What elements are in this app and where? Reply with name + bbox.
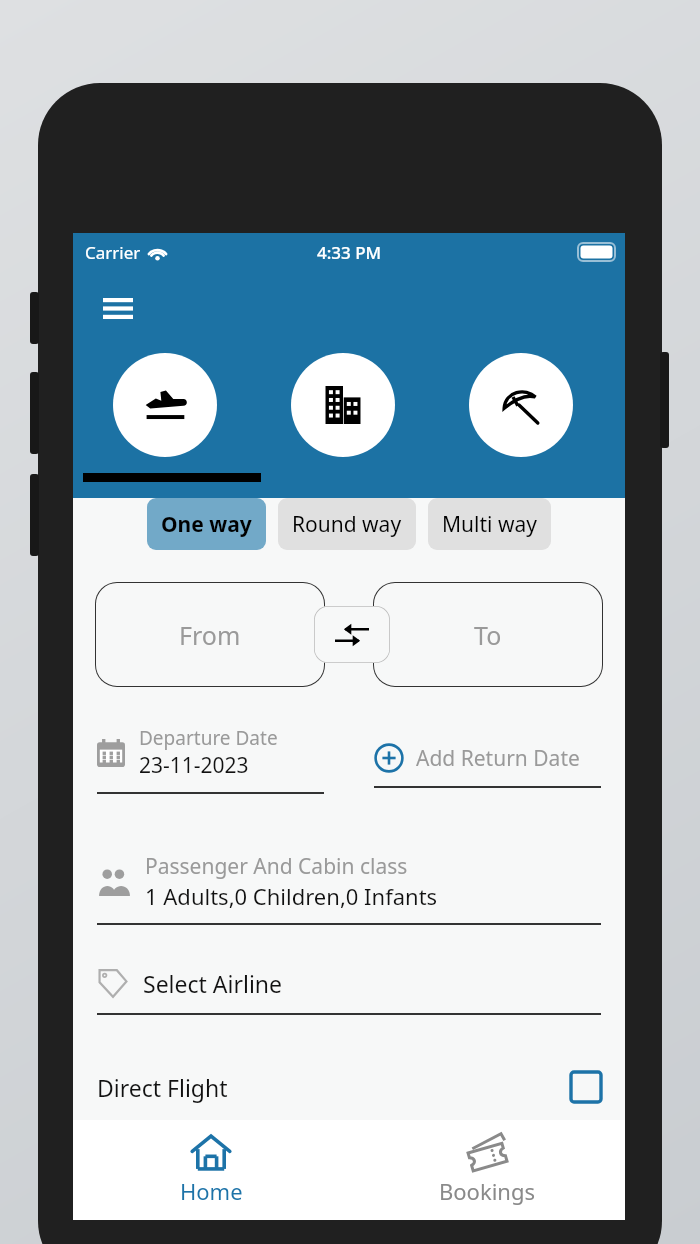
button[interactable]: Bookings (349, 1120, 625, 1220)
button[interactable]: Add Return Date (374, 725, 601, 788)
staticText: Home (180, 1176, 243, 1206)
staticText: Add Return Date (416, 744, 580, 773)
staticText: Passenger And Cabin class (145, 852, 408, 881)
button[interactable]: Menu (91, 285, 145, 331)
staticText: Bookings (439, 1176, 536, 1206)
button[interactable]: Departure Date (97, 725, 324, 794)
button[interactable]: Round way (278, 498, 416, 550)
button[interactable]: From (95, 582, 325, 687)
staticText: To (474, 618, 502, 652)
button[interactable]: Hotels (291, 353, 395, 457)
staticText: 1 Adults,0 Children,0 Infants (145, 881, 438, 911)
staticText: Multi way (442, 510, 537, 539)
button[interactable]: Home (73, 1120, 349, 1220)
button[interactable]: Multi way (428, 498, 551, 550)
button[interactable]: One way (147, 498, 266, 550)
staticText: From (179, 618, 241, 652)
staticText: Select Airline (143, 968, 283, 999)
staticText: Departure Date (139, 725, 278, 751)
staticText: 4:33 PM (317, 241, 382, 264)
button[interactable]: Select Airline (97, 967, 601, 1015)
staticText: One way (161, 510, 252, 539)
button[interactable]: To (373, 582, 603, 687)
staticText: Round way (292, 510, 402, 539)
staticText: Direct Flight (97, 1072, 228, 1103)
button[interactable]: Direct Flight (73, 1057, 625, 1117)
button[interactable]: Flights (113, 353, 217, 457)
button[interactable]: Passenger And Cabin class (97, 852, 601, 925)
staticText: Carrier (85, 241, 141, 264)
button[interactable]: Holidays (469, 353, 573, 457)
staticText: 23-11-2023 (139, 751, 249, 780)
button[interactable]: Swap (314, 606, 390, 663)
